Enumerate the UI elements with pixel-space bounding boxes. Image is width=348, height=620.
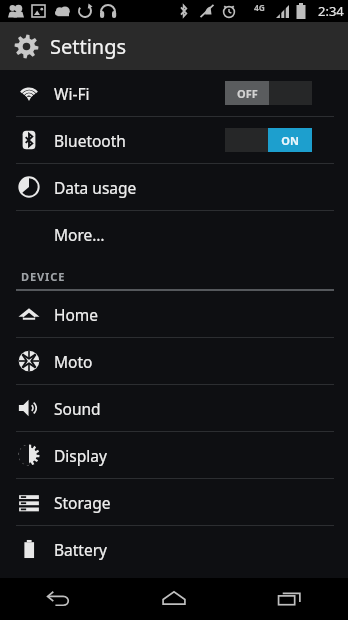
staticText: Display	[54, 445, 348, 466]
staticText: Data usage	[54, 177, 348, 198]
button[interactable]: Sound	[0, 385, 348, 431]
button[interactable]: Storage	[0, 479, 348, 525]
button[interactable]: Wi-Fi	[0, 70, 348, 116]
staticText: Wi-Fi	[54, 83, 225, 104]
button[interactable]: More…	[0, 211, 348, 257]
staticText: Moto	[54, 351, 348, 372]
staticText: Storage	[54, 492, 348, 513]
staticText: More…	[54, 224, 348, 245]
button[interactable]: Recent apps	[232, 578, 348, 620]
staticText: 4G	[254, 2, 266, 14]
button[interactable]: Battery	[0, 526, 348, 572]
button[interactable]: Moto	[0, 338, 348, 384]
staticText: OFF	[237, 86, 258, 101]
button[interactable]: Bluetooth	[0, 117, 348, 163]
staticText: DEVICE	[21, 269, 66, 284]
button[interactable]: OFF	[225, 81, 312, 105]
button[interactable]: Back	[0, 578, 116, 620]
staticText: ON	[281, 133, 299, 148]
button[interactable]: Data usage	[0, 164, 348, 210]
staticText: Settings	[50, 33, 127, 60]
button[interactable]: Home	[116, 578, 232, 620]
staticText: Bluetooth	[54, 130, 225, 151]
staticText: Battery	[54, 539, 348, 560]
other: Settings	[11, 31, 41, 61]
staticText: 2:34	[318, 2, 344, 20]
staticText: Sound	[54, 398, 348, 419]
button[interactable]: Home	[0, 291, 348, 337]
button[interactable]: ON	[225, 128, 312, 152]
staticText: Home	[54, 304, 348, 325]
button[interactable]: Display	[0, 432, 348, 478]
